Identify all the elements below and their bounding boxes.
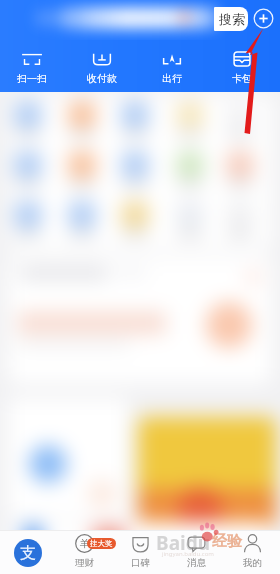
- button[interactable]: 羊: [56, 531, 112, 574]
- button[interactable]: Home: [0, 531, 56, 574]
- button[interactable]: Add: [252, 7, 275, 30]
- staticText: 搜索: [219, 11, 245, 27]
- button[interactable]: 卡包: [207, 48, 277, 85]
- staticText: Baidu: [156, 530, 211, 556]
- button[interactable]: 扫一扫: [0, 48, 67, 85]
- button[interactable]: 我的: [224, 531, 280, 574]
- staticText: 羊: [80, 537, 90, 550]
- button[interactable]: 消息: [168, 531, 224, 574]
- button[interactable]: 出行: [137, 48, 207, 85]
- button[interactable]: 搜索: [5, 0, 248, 40]
- staticText: 消息: [187, 557, 206, 569]
- staticText: 卡包: [232, 72, 252, 85]
- staticText: 扫一扫: [17, 72, 47, 85]
- staticText: 挂大奖: [90, 539, 113, 548]
- button[interactable]: 口碑: [112, 531, 168, 574]
- staticText: 我的: [243, 557, 262, 569]
- staticText: 收付款: [87, 72, 117, 85]
- staticText: jingyan.baidu.com: [162, 550, 214, 558]
- staticText: 口碑: [131, 557, 150, 569]
- staticText: 出行: [162, 72, 182, 85]
- staticText: 支: [20, 543, 36, 563]
- button[interactable]: 收付款: [67, 48, 137, 85]
- staticText: 经验: [212, 532, 242, 551]
- staticText: 理财: [75, 557, 94, 569]
